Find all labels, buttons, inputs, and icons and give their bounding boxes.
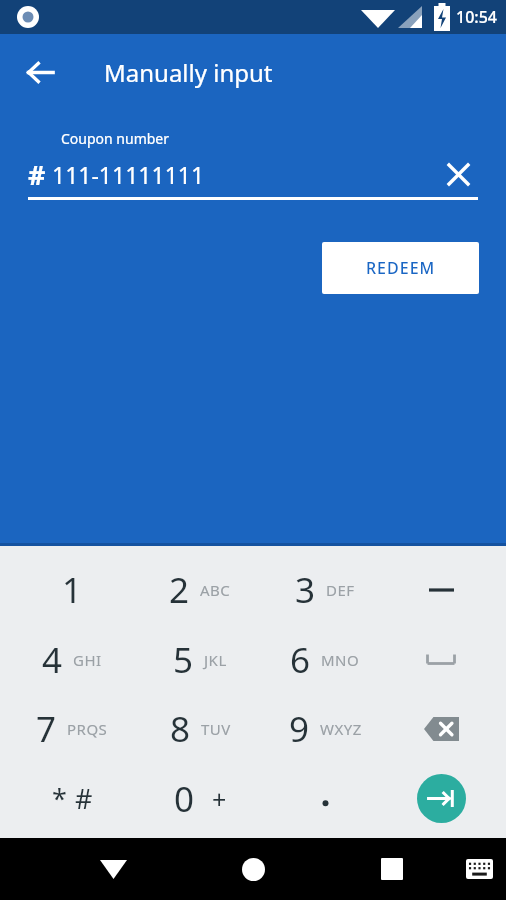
staticText: 3 (295, 566, 316, 614)
staticText: JKL (204, 650, 227, 670)
button[interactable]: 0 (144, 764, 256, 833)
button[interactable]: Clear (438, 155, 478, 193)
button[interactable]: 1 (16, 555, 128, 624)
staticText: # (75, 780, 93, 817)
button[interactable]: 8 (144, 694, 256, 763)
staticText: MNO (321, 650, 360, 670)
button[interactable]: 3 (269, 555, 381, 624)
button[interactable]: Switch keyboard (458, 848, 500, 890)
staticText: DEF (326, 580, 355, 600)
staticText: * (52, 780, 67, 817)
button[interactable]: 9 (269, 694, 381, 763)
staticText: Manually input (104, 56, 273, 89)
button[interactable]: 7 (16, 694, 128, 763)
button[interactable]: Back (16, 48, 64, 96)
button[interactable]: 4 (16, 625, 128, 694)
staticText: 10:54 (456, 6, 497, 28)
staticText: 8 (170, 705, 191, 753)
button[interactable]: Recents (368, 845, 416, 893)
staticText: 5 (173, 636, 194, 684)
button[interactable]: Minus (401, 555, 481, 624)
staticText: TUV (201, 719, 231, 739)
staticText: 4 (42, 636, 63, 684)
staticText: GHI (73, 650, 102, 670)
button[interactable] (269, 764, 381, 833)
staticText: 6 (290, 636, 311, 684)
staticText: REDEEM (366, 257, 436, 279)
staticText: WXYZ (320, 719, 362, 739)
staticText: 2 (169, 566, 190, 614)
button[interactable]: Back (89, 845, 137, 893)
button[interactable]: Enter (401, 764, 481, 833)
button[interactable]: REDEEM (322, 242, 479, 294)
button[interactable]: Home (229, 845, 277, 893)
staticText: ABC (200, 580, 231, 600)
staticText: Coupon number (61, 129, 170, 148)
staticText: 9 (289, 705, 310, 753)
staticText: 0 (174, 775, 195, 823)
staticText: # (28, 156, 46, 193)
staticText: 7 (36, 705, 57, 753)
staticText: 111-11111111 (52, 159, 205, 190)
button[interactable]: Backspace (401, 694, 481, 763)
staticText: 1 (62, 566, 83, 614)
button[interactable]: 6 (269, 625, 381, 694)
button[interactable]: Space (401, 625, 481, 694)
staticText: PRQS (67, 719, 108, 739)
button[interactable]: 5 (144, 625, 256, 694)
button[interactable]: * (16, 764, 128, 833)
staticText: + (212, 782, 227, 816)
button[interactable]: 2 (144, 555, 256, 624)
